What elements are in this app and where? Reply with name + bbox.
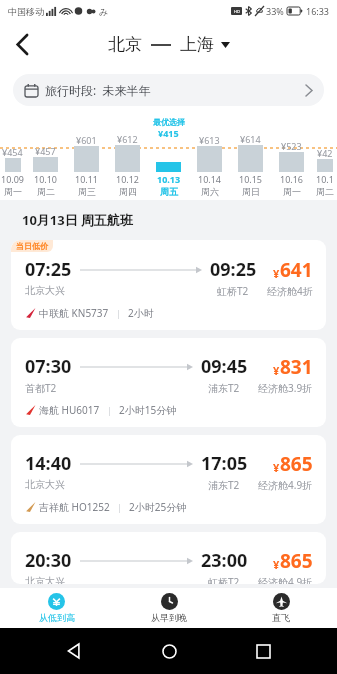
staticText: 10.11 [75,173,99,185]
button[interactable]: ¥454 [0,114,25,200]
staticText: | [117,501,122,513]
staticText: 2小时25分钟 [129,500,187,514]
staticText: 10.15 [239,173,263,185]
staticText: ¥614 [240,133,261,145]
staticText: 周五 [160,186,178,197]
staticText: ¥415 [158,127,179,139]
staticText: 10.09 [1,173,25,185]
staticText: ¥42 [317,147,333,159]
staticText: 浦东T2 [208,478,240,492]
staticText: み [99,6,109,17]
staticText: 从早到晚 [151,612,187,623]
staticText: 10.16 [280,173,304,185]
staticText: 浦东T2 [208,381,240,395]
staticText: ¥454 [2,146,23,158]
staticText: 641 [280,257,313,283]
staticText: 旅行时段: 未来半年 [45,82,151,98]
staticText: 直飞 [272,612,290,623]
staticText: ¥457 [35,145,56,157]
staticText: 北京 [108,34,142,55]
staticText: 经济舱4.9折 [258,575,313,584]
staticText: 16:33 [306,5,330,17]
button[interactable]: ¥523 [271,114,312,200]
button[interactable]: ¥457 [25,114,66,200]
staticText: ¥ [273,363,280,378]
staticText: | [107,404,112,416]
staticText: 虹桥T2 [208,575,240,584]
staticText: 20:30 [25,548,72,573]
staticText: ¥ [273,266,280,281]
button[interactable]: Recents [243,631,283,671]
staticText: ¥ [273,557,280,572]
button[interactable]: 北京 [108,34,230,55]
button[interactable]: 从早到晚 [113,588,225,628]
staticText: ¥613 [199,134,220,146]
button[interactable]: ¥601 [66,114,107,200]
staticText: 北京大兴 [25,284,65,297]
staticText: 虹桥T2 [217,284,249,298]
staticText: HD [234,9,240,14]
button[interactable]: ¥612 [107,114,148,200]
staticText: 10.1 [316,173,334,185]
staticText: 北京大兴 [25,478,65,491]
button[interactable]: 当日低价 [11,240,326,330]
staticText: 865 [280,451,313,477]
button[interactable]: Back [0,22,44,66]
staticText: ¥601 [76,134,97,146]
staticText: 海航 HU6017 [39,403,100,417]
staticText: 吉祥航 HO1252 [39,500,110,514]
staticText: 10月13日 周五航班 [22,211,134,229]
staticText: 10.10 [34,173,58,185]
staticText: 周二 [316,186,334,197]
staticText: ¥ [273,460,280,475]
button[interactable]: 14:40 [11,435,326,524]
staticText: 最优选择 [153,117,185,127]
staticText: ¥523 [281,140,302,152]
staticText: 周六 [201,186,219,197]
staticText: 周三 [78,186,96,197]
button[interactable]: 直飞 [225,588,337,628]
staticText: 831 [280,354,313,380]
button[interactable]: ¥613 [189,114,230,200]
staticText: 07:30 [25,354,72,379]
staticText: 中联航 KN5737 [39,306,109,320]
staticText: 865 [280,548,313,574]
button[interactable]: 07:30 [11,338,326,427]
staticText: 33% [266,5,284,17]
staticText: 上海 [180,34,214,55]
staticText: 周日 [242,186,260,197]
staticText: 当日低价 [16,241,48,251]
staticText: 07:25 [25,257,72,282]
staticText: 09:45 [201,354,248,379]
button[interactable]: ¥42 [312,114,337,200]
button[interactable]: Home [149,631,189,671]
staticText: 10.12 [116,173,140,185]
staticText: 周二 [37,186,55,197]
staticText: 经济舱4.9折 [258,478,313,492]
staticText: ¥612 [117,133,138,145]
staticText: 14:40 [25,451,72,476]
staticText: 17:05 [201,451,248,476]
staticText: 09:25 [210,257,257,282]
button[interactable]: 20:30 [11,532,326,584]
staticText: 经济舱4折 [267,284,313,298]
staticText: 10.14 [198,173,222,185]
staticText: 10.13 [157,173,181,185]
staticText: | [116,307,121,319]
button[interactable]: Back [54,631,94,671]
button[interactable]: 最优选择 [148,114,189,200]
staticText: 从低到高 [39,612,75,623]
staticText: 中国移动 [8,6,44,17]
staticText: 周一 [4,186,22,197]
staticText: 经济舱3.9折 [258,381,313,395]
button[interactable]: 从低到高 [0,588,113,628]
staticText: 首都T2 [25,381,57,395]
button[interactable]: 旅行时段: 未来半年 [13,74,324,106]
staticText: 23:00 [201,548,248,573]
staticText: 北京大兴 [25,575,65,584]
staticText: 周四 [119,186,137,197]
staticText: 2小时15分钟 [119,403,177,417]
staticText: 2小时 [128,306,154,320]
staticText: 周一 [283,186,301,197]
button[interactable]: ¥614 [230,114,271,200]
